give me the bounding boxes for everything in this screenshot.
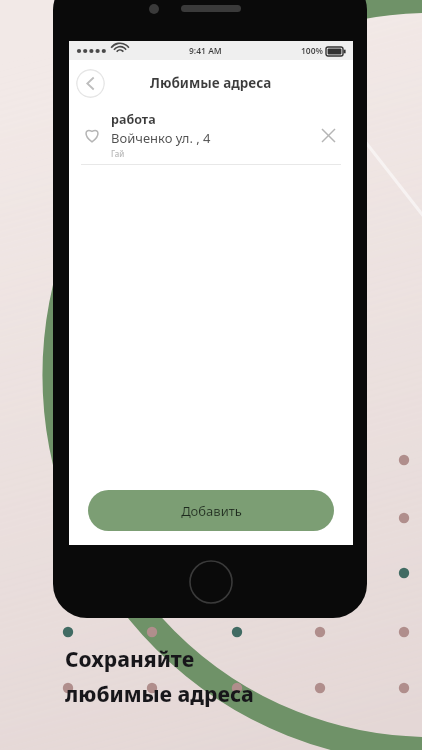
staticText: 9:41 AM — [189, 45, 222, 57]
button[interactable]: Remove — [315, 122, 341, 148]
staticText: Сохраняйте — [65, 645, 195, 674]
button[interactable]: работа — [69, 106, 353, 164]
staticText: Добавить — [181, 502, 242, 520]
staticText: Войченко ул. , 4 — [111, 129, 211, 147]
staticText: 100% — [301, 45, 324, 57]
button[interactable]: Добавить — [88, 490, 334, 531]
staticText: Любимые адреса — [150, 74, 272, 92]
staticText: Гай — [111, 148, 125, 159]
staticText: работа — [111, 111, 156, 128]
staticText: любимые адреса — [65, 680, 254, 709]
button[interactable]: Back — [76, 69, 105, 98]
